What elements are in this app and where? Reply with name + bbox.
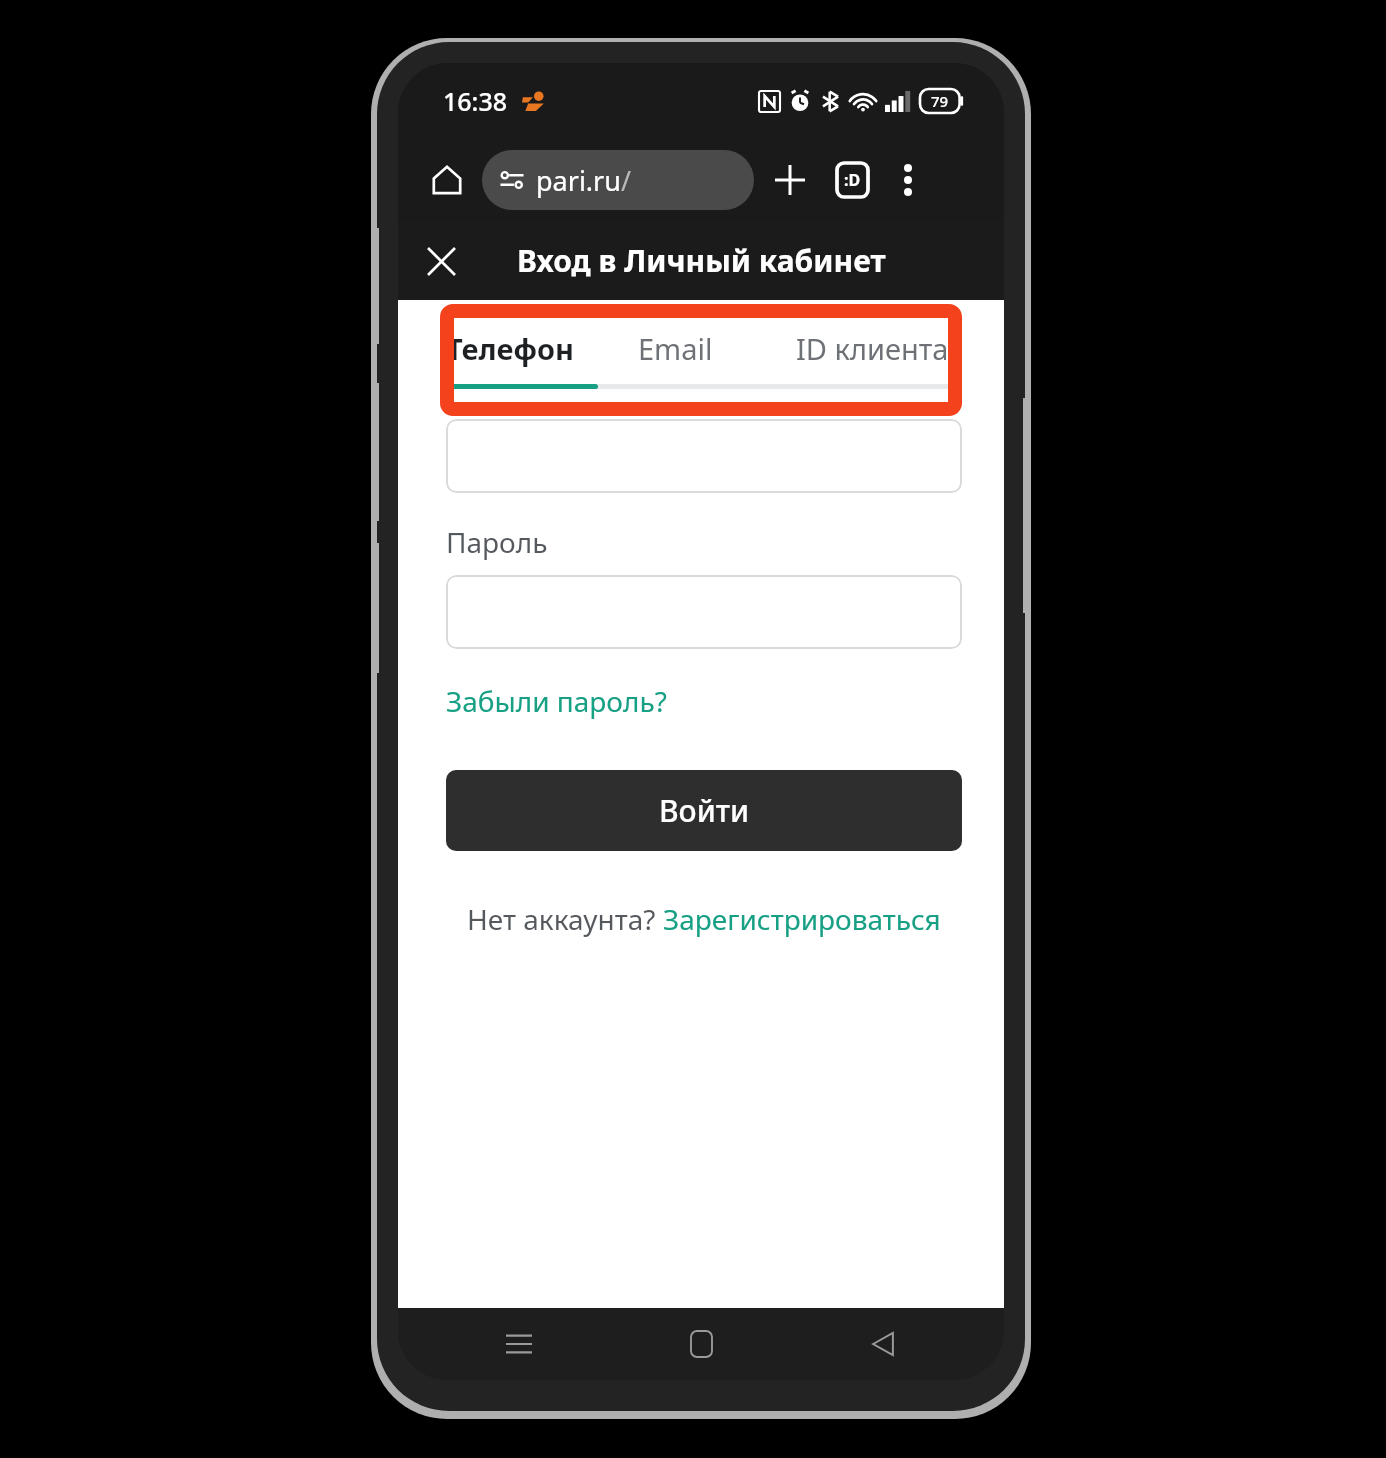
button[interactable]: Email (638, 328, 758, 368)
staticText: Email (638, 329, 713, 368)
button[interactable]: Забыли пароль? (446, 682, 667, 720)
staticText: 16:38 (443, 84, 508, 118)
button[interactable]: More options (884, 156, 932, 204)
button[interactable]: Recent apps (494, 1319, 544, 1369)
button[interactable]: Телефон (446, 328, 596, 368)
staticText: Войти (659, 790, 750, 831)
staticText: ID клиента (796, 329, 949, 368)
staticText: pari.ru (536, 162, 621, 199)
staticText: Телефон (446, 329, 575, 368)
button[interactable] (446, 419, 962, 493)
button[interactable]: Back (858, 1319, 908, 1369)
button[interactable]: Home (424, 157, 470, 203)
staticText: Зарегистрироваться (663, 900, 941, 938)
staticText: :D (844, 169, 861, 191)
button[interactable]: pari.ru (482, 150, 754, 210)
button[interactable]: Home (676, 1319, 726, 1369)
button[interactable]: Tabs (826, 154, 878, 206)
staticText: Нет аккаунта? (467, 900, 663, 938)
button[interactable]: ID клиента (796, 328, 949, 368)
button[interactable]: Зарегистрироваться (663, 900, 941, 938)
staticText: Забыли пароль? (446, 682, 667, 720)
staticText: 79 (931, 91, 949, 111)
button[interactable]: Close (414, 234, 468, 288)
button[interactable]: Войти (446, 770, 962, 851)
staticText: Пароль (446, 523, 548, 561)
button[interactable] (446, 575, 962, 649)
staticText: /authProce (621, 162, 754, 199)
staticText: Вход в Личный кабинет (517, 240, 886, 281)
button[interactable]: New tab (764, 154, 816, 206)
